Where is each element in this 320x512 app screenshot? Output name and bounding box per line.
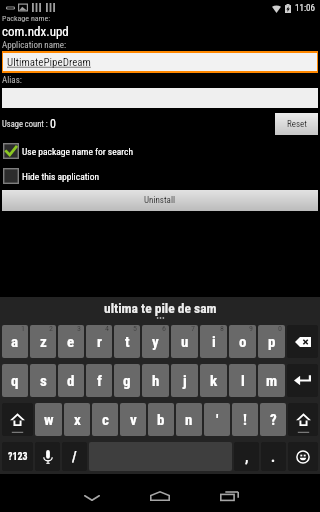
button[interactable]: g (114, 364, 140, 397)
button[interactable]: v (120, 403, 146, 436)
staticText: Application name: (2, 40, 67, 51)
staticText: c (102, 411, 109, 429)
staticText: ! (243, 411, 247, 429)
button[interactable]: / (62, 442, 87, 471)
button[interactable]: b (148, 403, 174, 436)
button[interactable]: Voice input (35, 442, 60, 471)
staticText: u (181, 333, 189, 351)
button[interactable]: q (2, 364, 28, 397)
staticText: x (74, 411, 81, 429)
staticText: o (239, 333, 247, 351)
staticText: , (245, 449, 249, 465)
button[interactable]: d (58, 364, 84, 397)
staticText: w (44, 411, 54, 429)
staticText: Usage count : (2, 119, 50, 129)
staticText: 2 (49, 325, 53, 333)
staticText: . (271, 449, 276, 465)
button[interactable]: Recent apps (205, 474, 253, 512)
staticText: com.ndx.upd (2, 24, 69, 39)
staticText: h (152, 372, 160, 390)
button[interactable]: a (2, 325, 28, 358)
staticText: g (123, 372, 131, 390)
staticText: ultima te pile de sam (104, 300, 217, 316)
button[interactable]: m (258, 364, 285, 397)
button[interactable]: n (176, 403, 202, 436)
button[interactable]: Shift (2, 403, 33, 436)
staticText: j (183, 372, 187, 390)
staticText: Use package name for search (22, 146, 133, 157)
staticText: Uninstall (144, 195, 176, 206)
staticText: q (11, 372, 19, 390)
staticText: 6 (162, 325, 166, 333)
staticText: y (152, 333, 159, 351)
staticText: ' (216, 411, 219, 429)
button[interactable]: i (200, 325, 227, 358)
staticText: z (40, 333, 47, 351)
staticText: 4 (105, 325, 109, 333)
button[interactable]: Symbols (2, 442, 33, 471)
staticText: s (40, 372, 47, 390)
button[interactable]: h (142, 364, 169, 397)
staticText: UltimatePipeDream (7, 56, 91, 69)
staticText: r (97, 333, 102, 351)
button[interactable]: k (200, 364, 227, 397)
staticText: Reset (287, 119, 307, 130)
button[interactable]: Hide this application (3, 168, 100, 184)
button[interactable]: y (142, 325, 169, 358)
button[interactable]: Emoji (288, 442, 318, 471)
button[interactable]: Backspace (287, 325, 318, 358)
button[interactable]: Home (136, 474, 184, 512)
button[interactable]: r (86, 325, 112, 358)
button[interactable]: s (30, 364, 56, 397)
staticText: 7 (191, 325, 195, 333)
staticText: f (97, 372, 102, 390)
button[interactable]: ? (260, 403, 286, 436)
staticText: m (266, 372, 278, 390)
button[interactable]: j (171, 364, 198, 397)
button[interactable]: o (229, 325, 256, 358)
staticText: t (125, 333, 130, 351)
staticText: e (67, 333, 75, 351)
button[interactable]: p (258, 325, 285, 358)
button[interactable]: e (58, 325, 84, 358)
staticText: b (157, 411, 165, 429)
button[interactable]: Reset (275, 113, 318, 135)
staticText: 0 (278, 325, 282, 333)
button[interactable]: Hide keyboard (68, 474, 116, 512)
button[interactable]: Enter (287, 364, 318, 397)
button[interactable]: , (234, 442, 259, 471)
button[interactable]: c (92, 403, 118, 436)
staticText: / (72, 449, 77, 465)
button[interactable]: ! (232, 403, 258, 436)
staticText: ? (270, 411, 277, 429)
staticText: a (11, 333, 19, 351)
button[interactable]: x (64, 403, 90, 436)
button[interactable]: Shift (288, 403, 318, 436)
staticText: 9 (249, 325, 253, 333)
staticText: Alias: (2, 75, 22, 86)
staticText: k (210, 372, 218, 390)
button[interactable]: f (86, 364, 112, 397)
staticText: i (212, 333, 216, 351)
button[interactable]: ' (204, 403, 230, 436)
button[interactable]: u (171, 325, 198, 358)
button[interactable]: UltimatePipeDream (3, 53, 317, 71)
staticText: n (185, 411, 193, 429)
button[interactable]: w (35, 403, 62, 436)
button[interactable]: . (261, 442, 286, 471)
staticText: Hide this application (22, 171, 100, 182)
button[interactable]: Use package name for search (3, 143, 133, 159)
staticText: 3 (77, 325, 81, 333)
button[interactable]: t (114, 325, 140, 358)
staticText: l (241, 372, 245, 390)
button[interactable]: l (229, 364, 256, 397)
staticText: Package name: (2, 14, 51, 23)
staticText: 8 (220, 325, 224, 333)
staticText: 5 (133, 325, 137, 333)
staticText: p (268, 333, 276, 351)
staticText: 11:06 (295, 3, 315, 14)
button[interactable]: Uninstall (2, 190, 318, 211)
button[interactable]: z (30, 325, 56, 358)
